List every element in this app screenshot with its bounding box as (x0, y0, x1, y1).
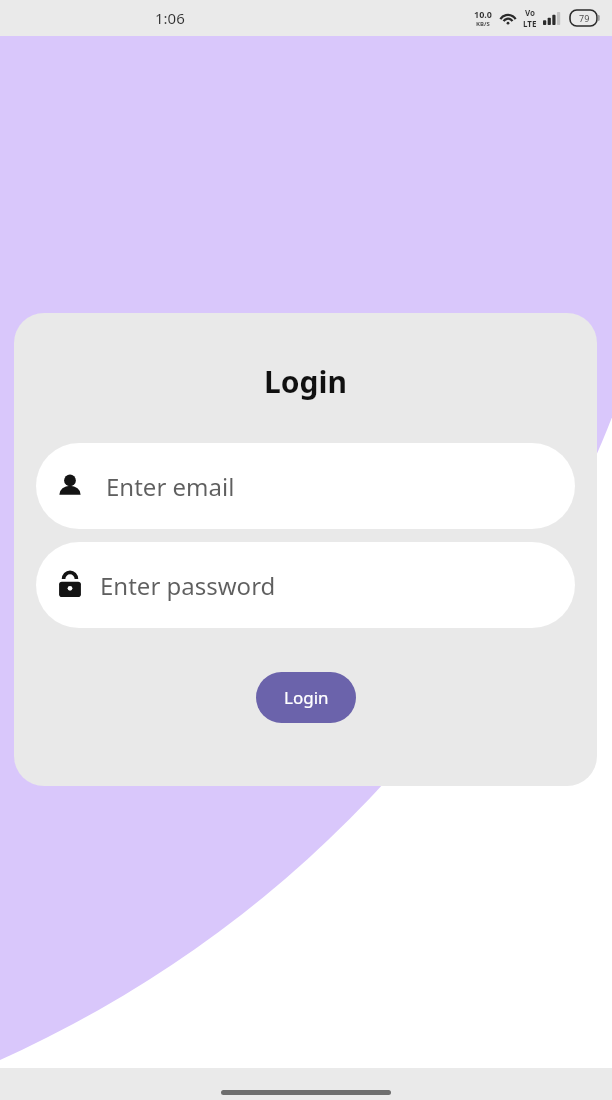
staticText: Login (284, 686, 329, 709)
staticText: 79 (579, 12, 590, 24)
staticText: Enter password (100, 569, 276, 602)
staticText: KB/S (476, 20, 490, 28)
staticText: Enter email (106, 470, 235, 503)
staticText: LTE (523, 18, 537, 29)
other: Password (56, 571, 84, 599)
other: Email (56, 472, 84, 500)
button[interactable]: Password (36, 542, 575, 628)
button[interactable]: Login (256, 672, 356, 723)
staticText: 1:06 (155, 8, 185, 28)
staticText: 10.0 (474, 8, 492, 20)
staticText: Login (14, 361, 597, 402)
staticText: Vo (525, 7, 536, 18)
button[interactable]: Email (36, 443, 575, 529)
